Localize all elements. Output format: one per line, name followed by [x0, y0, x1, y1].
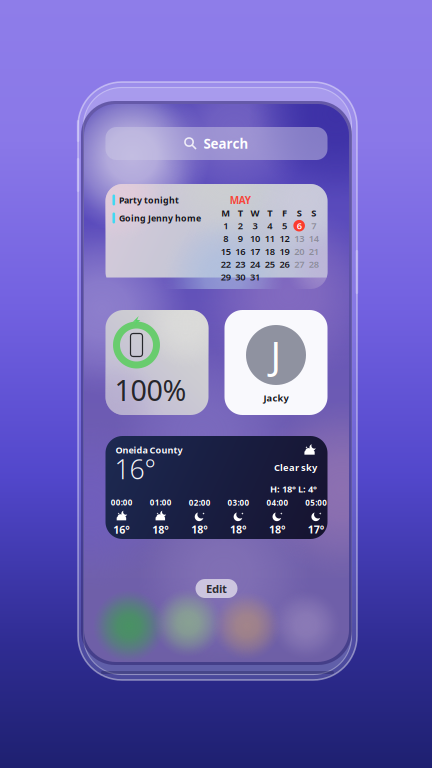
staticText: 16° — [114, 451, 155, 487]
staticText: MAY — [230, 193, 251, 207]
staticText: S — [311, 206, 316, 219]
staticText: 25 — [265, 258, 275, 270]
staticText: 12 — [279, 232, 289, 245]
staticText: 18° — [230, 522, 247, 536]
staticText: 31 — [250, 270, 260, 283]
staticText: Oneida County — [115, 444, 182, 456]
staticText: 23 — [235, 258, 245, 270]
staticText: 26 — [279, 258, 289, 270]
button[interactable]: Edit — [195, 579, 237, 598]
staticText: 9 — [238, 232, 243, 245]
staticText: H: 18° L: 4° — [270, 483, 317, 495]
staticText: 5 — [282, 219, 287, 232]
staticText: 100% — [114, 370, 186, 409]
staticText: 11 — [265, 232, 275, 245]
staticText: 3 — [253, 219, 258, 232]
staticText: W — [251, 206, 260, 219]
staticText: 20 — [294, 245, 304, 258]
staticText: 27 — [294, 258, 304, 270]
staticText: 17° — [308, 522, 325, 536]
staticText: 00:00 — [111, 497, 133, 508]
button[interactable]: J — [224, 310, 327, 415]
staticText: 4 — [267, 219, 272, 232]
staticText: 16 — [235, 245, 245, 258]
staticText: 10 — [250, 232, 260, 245]
staticText: 19 — [279, 245, 289, 258]
staticText: 14 — [309, 232, 319, 245]
staticText: 6 — [297, 219, 302, 232]
staticText: 16° — [113, 522, 130, 537]
staticText: Party tonight — [119, 194, 179, 206]
staticText: 02:00 — [189, 497, 211, 508]
staticText: 21 — [309, 245, 319, 258]
staticText: 2 — [238, 219, 243, 232]
staticText: 18 — [265, 245, 275, 258]
staticText: F — [282, 206, 287, 219]
staticText: 30 — [235, 270, 245, 283]
staticText: 15 — [221, 245, 231, 258]
staticText: T — [267, 206, 272, 219]
staticText: Going Jenny home — [119, 212, 201, 224]
staticText: Edit — [206, 581, 227, 596]
staticText: S — [297, 206, 302, 219]
button[interactable]: Oneida County — [105, 436, 327, 539]
staticText: 05:00 — [305, 497, 327, 508]
staticText: 13 — [294, 232, 304, 245]
staticText: 18° — [152, 522, 169, 537]
staticText: 04:00 — [266, 497, 288, 508]
button[interactable]: 100% — [105, 310, 208, 415]
staticText: 18° — [191, 522, 208, 536]
staticText: 01:00 — [150, 497, 172, 508]
staticText: 1 — [223, 219, 228, 232]
staticText: 29 — [221, 270, 231, 283]
staticText: 17 — [250, 245, 260, 258]
staticText: Search — [203, 134, 248, 153]
staticText: 8 — [223, 232, 228, 245]
staticText: J — [270, 328, 281, 380]
staticText: 03:00 — [227, 497, 249, 508]
staticText: 28 — [309, 258, 319, 270]
button[interactable]: Search — [105, 127, 327, 160]
staticText: Jacky — [263, 392, 288, 404]
staticText: 24 — [250, 258, 260, 270]
staticText: 7 — [311, 219, 316, 232]
staticText: Clear sky — [274, 461, 317, 474]
staticText: M — [221, 206, 230, 219]
staticText: 18° — [269, 522, 286, 536]
staticText: 22 — [221, 258, 231, 270]
button[interactable]: Party tonight — [105, 184, 327, 289]
staticText: T — [238, 206, 243, 219]
